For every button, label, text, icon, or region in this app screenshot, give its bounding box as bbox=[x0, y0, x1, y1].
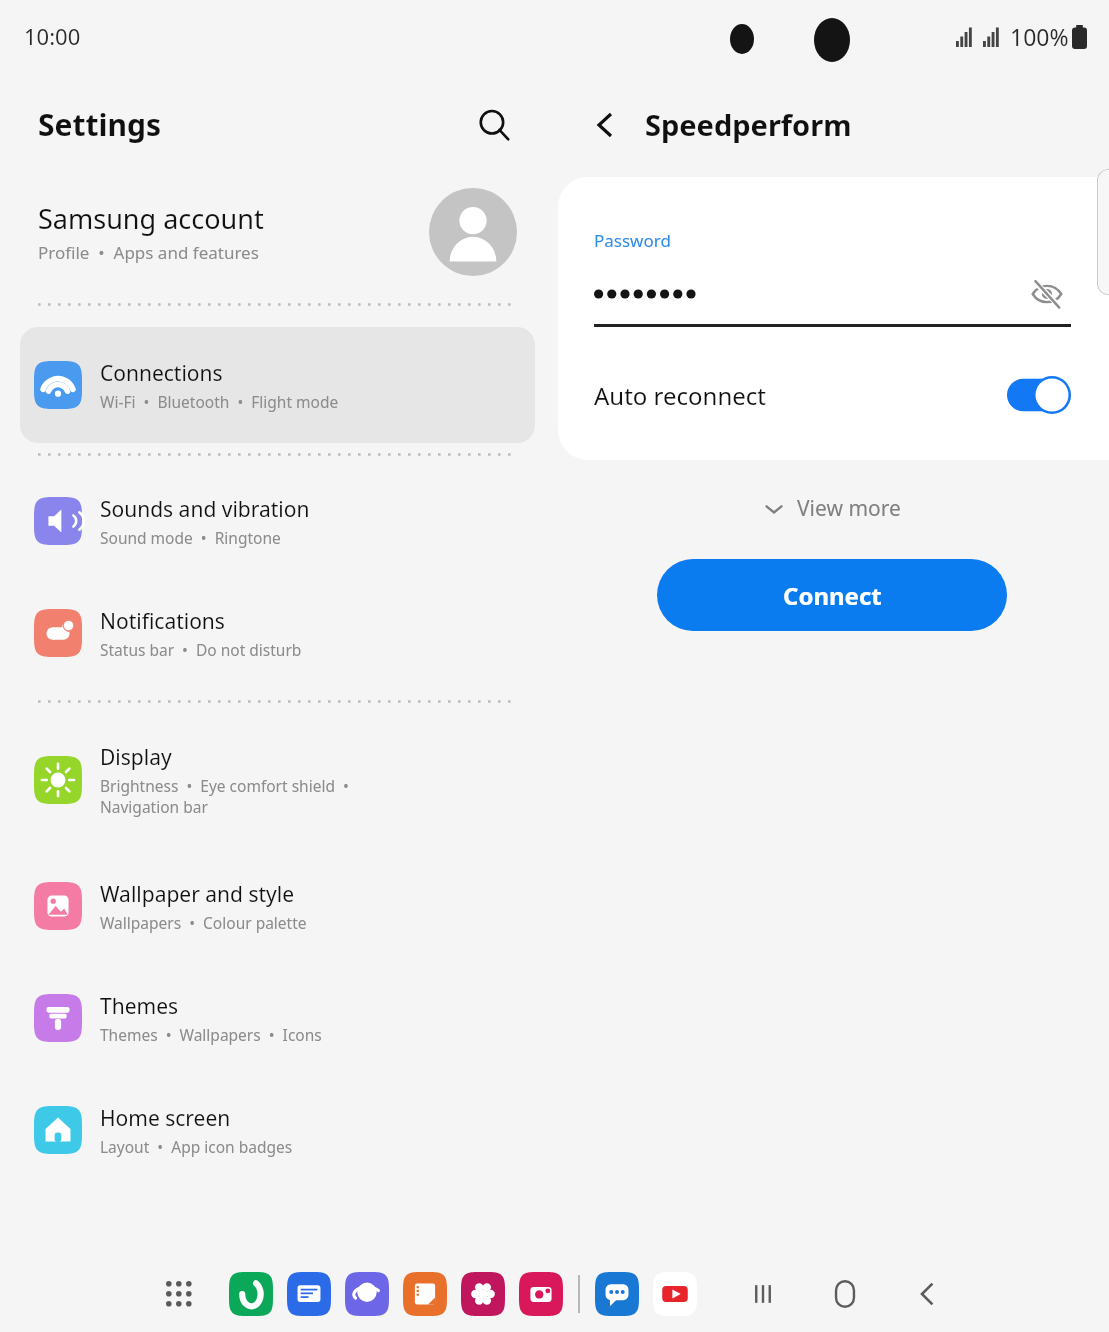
staticText: Status bar • Do not disturb bbox=[100, 639, 302, 660]
button[interactable]: Back bbox=[900, 1267, 954, 1321]
staticText: Navigation bar bbox=[100, 796, 208, 817]
button[interactable]: Recents bbox=[736, 1267, 790, 1321]
staticText: Display bbox=[100, 743, 172, 772]
button[interactable]: View more bbox=[753, 488, 911, 529]
button[interactable]: Apps bbox=[156, 1271, 202, 1317]
staticText: Settings bbox=[38, 104, 161, 145]
button[interactable]: Galaxy Store bbox=[460, 1271, 506, 1317]
staticText: Brightness • Eye comfort shield • bbox=[100, 775, 349, 796]
staticText: Sounds and vibration bbox=[100, 495, 310, 524]
button[interactable]: YouTube bbox=[652, 1271, 698, 1317]
staticText: Wallpapers • Colour palette bbox=[100, 912, 307, 933]
button[interactable]: Connect bbox=[657, 559, 1007, 631]
button[interactable]: Show password bbox=[1023, 272, 1071, 316]
button[interactable]: Sounds and vibration bbox=[20, 472, 535, 570]
button[interactable]: Back bbox=[580, 100, 630, 150]
button[interactable]: Messages bbox=[286, 1271, 332, 1317]
button[interactable]: Wallpaper and style bbox=[20, 857, 535, 955]
staticText: Connections bbox=[100, 359, 223, 388]
button[interactable]: Camera bbox=[518, 1271, 564, 1317]
staticText: Layout • App icon badges bbox=[100, 1136, 293, 1157]
button[interactable]: Chat bbox=[594, 1271, 640, 1317]
staticText: Auto reconnect bbox=[594, 379, 1007, 412]
staticText: Password bbox=[594, 229, 671, 252]
staticText: Themes bbox=[100, 992, 179, 1021]
button[interactable]: Notes bbox=[402, 1271, 448, 1317]
button[interactable]: Themes bbox=[20, 969, 535, 1067]
button[interactable]: Phone bbox=[228, 1271, 274, 1317]
button[interactable]: Internet bbox=[344, 1271, 390, 1317]
button[interactable]: Notifications bbox=[20, 584, 535, 682]
button[interactable]: Home screen bbox=[20, 1081, 535, 1179]
staticText: Connect bbox=[783, 579, 882, 612]
staticText: Sound mode • Ringtone bbox=[100, 527, 281, 548]
staticText: Themes • Wallpapers • Icons bbox=[100, 1024, 322, 1045]
staticText: View more bbox=[797, 494, 901, 523]
button[interactable]: Home bbox=[818, 1267, 872, 1321]
staticText: 10:00 bbox=[24, 21, 81, 51]
staticText: Samsung account bbox=[38, 200, 264, 237]
button[interactable]: Connections bbox=[20, 327, 535, 443]
button[interactable]: Samsung account bbox=[0, 177, 555, 287]
staticText: Wi-Fi • Bluetooth • Flight mode bbox=[100, 391, 339, 412]
staticText: 100% bbox=[1010, 21, 1069, 52]
button[interactable]: Auto reconnect bbox=[594, 367, 1071, 423]
staticText: Speedperform bbox=[645, 105, 852, 144]
staticText: Home screen bbox=[100, 1104, 231, 1133]
staticText: Wallpaper and style bbox=[100, 880, 295, 909]
button[interactable]: Search bbox=[467, 98, 521, 152]
staticText: Profile • Apps and features bbox=[38, 241, 259, 264]
button[interactable]: Display bbox=[20, 725, 535, 835]
staticText: Notifications bbox=[100, 607, 225, 636]
